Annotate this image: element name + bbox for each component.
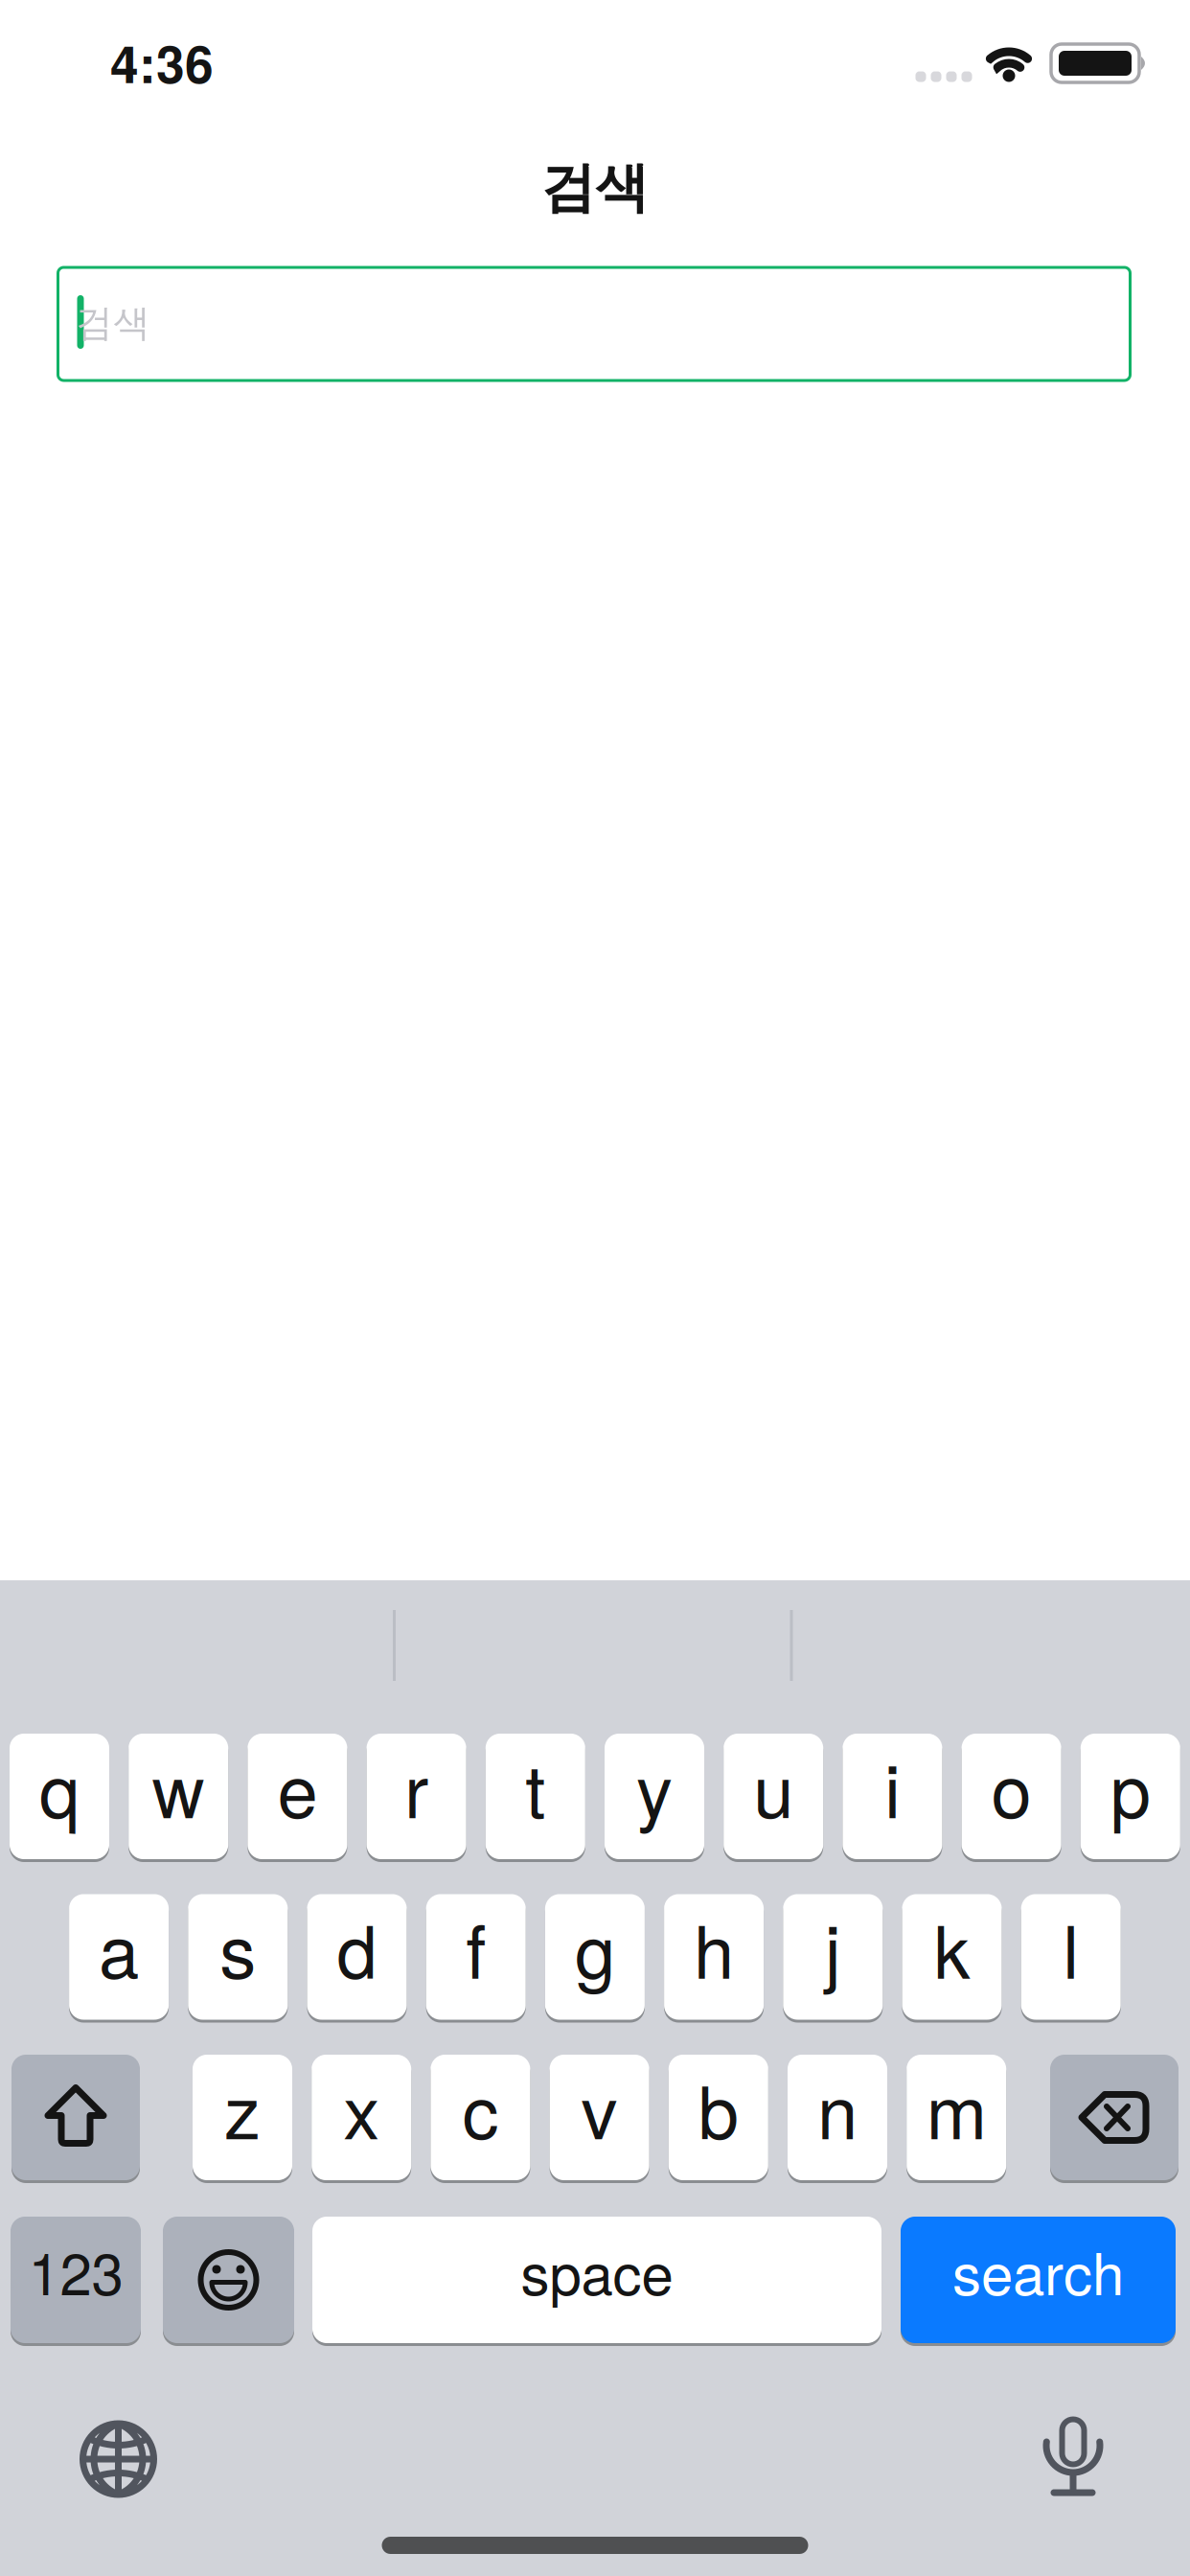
button[interactable]: c (431, 2053, 530, 2182)
staticText: z (224, 2056, 261, 2160)
button[interactable] (1020, 2403, 1126, 2508)
staticText: j (825, 1895, 841, 1999)
button[interactable]: s (188, 1893, 288, 2021)
staticText: u (753, 1735, 794, 1839)
button[interactable]: space (312, 2215, 881, 2345)
button[interactable]: q (10, 1732, 109, 1861)
staticText: space (521, 2229, 673, 2311)
staticText: h (694, 1895, 734, 1999)
staticText: 검색 (76, 300, 150, 346)
staticText: n (817, 2056, 858, 2160)
button[interactable]: g (545, 1893, 645, 2021)
staticText: b (698, 2056, 739, 2160)
button[interactable]: 123 (11, 2215, 141, 2345)
staticText: g (575, 1895, 615, 1999)
staticText: a (99, 1895, 139, 1999)
button[interactable] (58, 267, 1130, 380)
button[interactable]: f (426, 1893, 526, 2021)
staticText: f (466, 1895, 486, 1999)
staticText: w (152, 1735, 205, 1839)
button[interactable]: h (664, 1893, 764, 2021)
button[interactable]: e (248, 1732, 347, 1861)
button[interactable] (11, 2053, 140, 2182)
staticText: p (1110, 1735, 1151, 1839)
staticText: x (343, 2056, 380, 2160)
staticText: search (952, 2229, 1124, 2311)
button[interactable]: w (129, 1732, 228, 1861)
staticText: d (337, 1895, 377, 1999)
button[interactable]: b (669, 2053, 768, 2182)
button[interactable]: y (605, 1732, 704, 1861)
staticText: k (934, 1895, 970, 1999)
staticText: e (277, 1735, 318, 1839)
staticText: 123 (28, 2229, 123, 2311)
staticText: i (884, 1735, 901, 1839)
button[interactable] (1050, 2053, 1179, 2182)
button[interactable]: l (1021, 1893, 1121, 2021)
button[interactable]: x (312, 2053, 411, 2182)
staticText: 검색 (541, 155, 649, 221)
button[interactable]: u (724, 1732, 823, 1861)
staticText: v (581, 2056, 618, 2160)
button[interactable] (66, 2406, 171, 2512)
button[interactable]: n (788, 2053, 887, 2182)
staticText: c (462, 2056, 499, 2160)
staticText: l (1063, 1895, 1079, 1999)
staticText: o (991, 1735, 1032, 1839)
staticText: 4:36 (110, 26, 214, 99)
staticText: m (926, 2056, 987, 2160)
button[interactable]: m (907, 2053, 1006, 2182)
staticText: s (220, 1895, 256, 1999)
button[interactable]: k (902, 1893, 1002, 2021)
staticText: y (636, 1735, 673, 1839)
button[interactable]: a (69, 1893, 169, 2021)
button[interactable]: v (550, 2053, 649, 2182)
button[interactable]: i (843, 1732, 942, 1861)
staticText: q (39, 1735, 80, 1839)
button[interactable]: o (962, 1732, 1061, 1861)
button[interactable]: z (193, 2053, 292, 2182)
button[interactable]: d (307, 1893, 407, 2021)
button[interactable]: search (901, 2215, 1176, 2345)
staticText: r (404, 1735, 428, 1839)
button[interactable]: r (367, 1732, 466, 1861)
button[interactable]: j (783, 1893, 883, 2021)
staticText: t (525, 1735, 545, 1839)
button[interactable]: p (1081, 1732, 1180, 1861)
button[interactable] (163, 2215, 294, 2345)
button[interactable]: t (486, 1732, 585, 1861)
